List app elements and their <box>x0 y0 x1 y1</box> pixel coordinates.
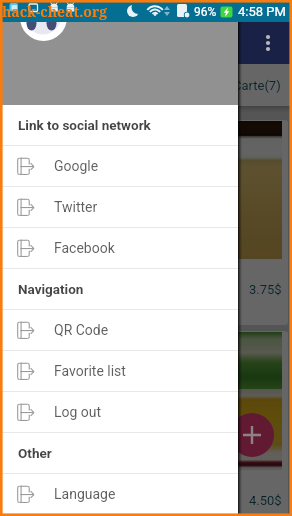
staticText: Navigation <box>18 281 84 297</box>
staticText: 3.75$ <box>249 282 282 297</box>
staticText: Language <box>54 486 116 502</box>
staticText: Favorite list <box>54 363 126 379</box>
staticText: Other <box>18 445 52 461</box>
staticText: Facebook <box>54 240 115 256</box>
staticText: Twitter <box>54 199 98 215</box>
staticText: Google <box>54 158 99 174</box>
button[interactable]: Facebook <box>0 228 238 268</box>
button[interactable]: Log out <box>0 392 238 432</box>
button[interactable]: 4.50$ <box>4 331 288 516</box>
staticText: hack-cheat.org <box>2 2 108 21</box>
staticText: Carte(7) <box>233 78 281 93</box>
staticText: 4:58 PM <box>238 4 286 19</box>
button[interactable]: Twitter <box>0 187 238 227</box>
staticText: 96% <box>194 5 217 19</box>
button[interactable]: Add <box>230 413 274 457</box>
button[interactable]: Google <box>0 146 238 186</box>
button[interactable]: Language <box>0 474 238 514</box>
button[interactable]: More options <box>252 27 284 59</box>
staticText: Link to social network <box>18 117 151 133</box>
staticText: QR Code <box>54 322 109 338</box>
button[interactable]: 3.75$ <box>4 120 288 325</box>
button[interactable]: QR Code <box>0 310 238 350</box>
staticText: Log out <box>54 404 102 420</box>
staticText: 4.50$ <box>249 493 282 508</box>
button[interactable]: Favorite list <box>0 351 238 391</box>
